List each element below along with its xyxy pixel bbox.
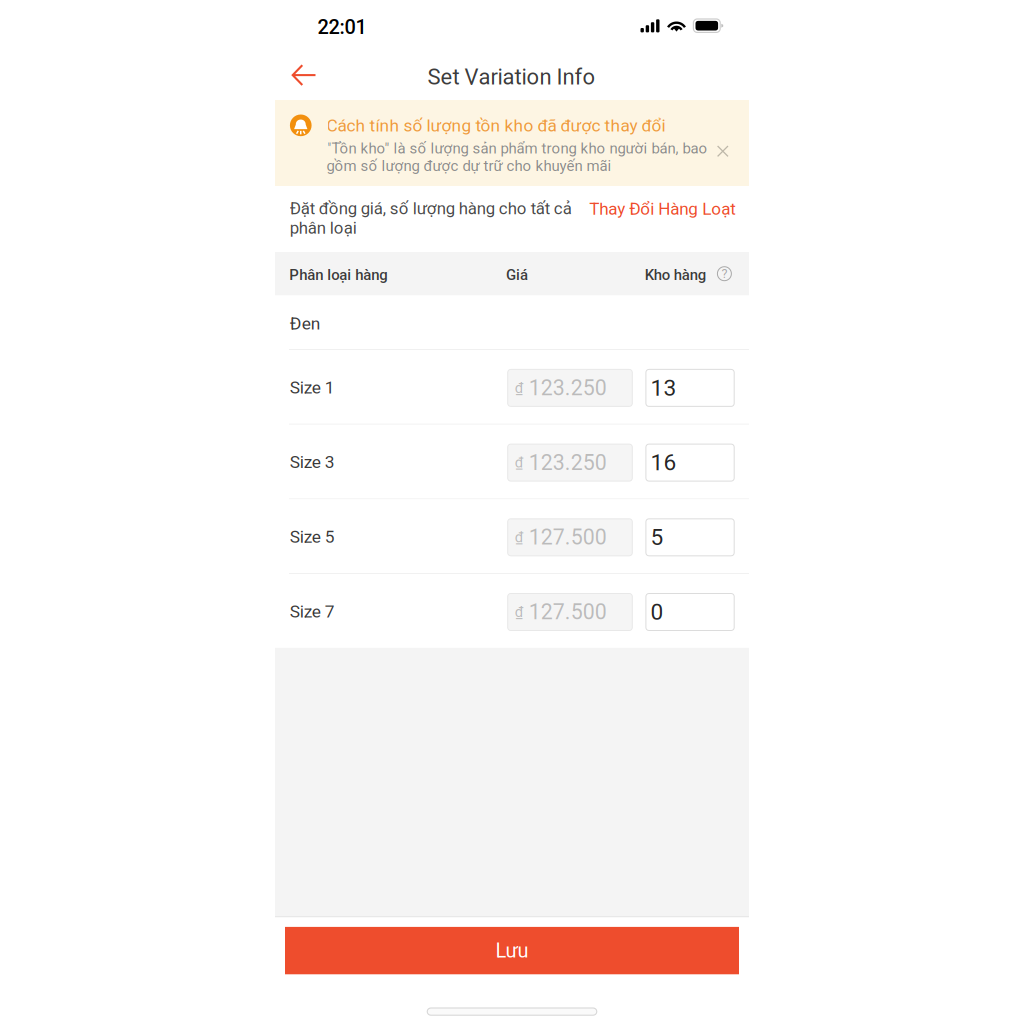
staticText: 22:01 xyxy=(317,15,366,39)
staticText: Giá xyxy=(506,266,528,284)
button[interactable]: Back xyxy=(282,53,326,97)
button[interactable]: Kho hàng info xyxy=(713,263,735,285)
staticText: Size 3 xyxy=(290,452,335,472)
staticText: ₫ xyxy=(515,529,523,546)
staticText: ₫ xyxy=(515,454,523,471)
staticText: Size 7 xyxy=(290,601,335,622)
staticText: 13 xyxy=(650,375,676,401)
button[interactable]: Giá Size 1 xyxy=(508,369,632,406)
staticText: 127.500 xyxy=(529,599,607,624)
staticText: 123.250 xyxy=(529,450,607,475)
button[interactable]: Giá Size 5 xyxy=(508,519,632,556)
button[interactable]: Thay Đổi Hàng Loạt xyxy=(584,195,741,223)
button[interactable]: Lưu xyxy=(285,927,739,974)
staticText: Đen xyxy=(290,313,321,334)
button[interactable]: Kho hàng Size 7 xyxy=(646,593,734,630)
staticText: 123.250 xyxy=(529,375,607,400)
staticText: ₫ xyxy=(515,379,523,396)
staticText: Size 5 xyxy=(290,527,335,547)
button[interactable]: Kho hàng Size 1 xyxy=(646,369,734,406)
button[interactable]: Kho hàng Size 5 xyxy=(646,519,734,556)
staticText: Set Variation Info xyxy=(427,64,595,90)
button[interactable]: Giá Size 7 xyxy=(508,593,632,630)
button[interactable]: Kho hàng Size 3 xyxy=(646,444,734,481)
staticText: ? xyxy=(721,266,727,281)
staticText: 5 xyxy=(650,524,663,551)
staticText: ₫ xyxy=(515,603,523,621)
staticText: Thay Đổi Hàng Loạt xyxy=(589,199,736,219)
staticText: 0 xyxy=(650,599,663,625)
staticText: Phân loại hàng xyxy=(289,266,387,284)
staticText: Kho hàng xyxy=(645,266,706,284)
staticText: Size 1 xyxy=(290,377,335,398)
button[interactable]: Giá Size 3 xyxy=(508,444,632,481)
staticText: 16 xyxy=(650,449,676,476)
staticText: 127.500 xyxy=(529,525,607,550)
staticText: Cách tính số lượng tồn kho đã được thay … xyxy=(326,115,665,136)
button[interactable]: Dismiss notice xyxy=(710,138,736,164)
staticText: "Tồn kho" là số lượng sản phẩm trong kho… xyxy=(326,140,707,175)
staticText: Lưu xyxy=(495,939,528,962)
staticText: Đặt đồng giá, số lượng hàng cho tất cả p… xyxy=(290,199,572,238)
